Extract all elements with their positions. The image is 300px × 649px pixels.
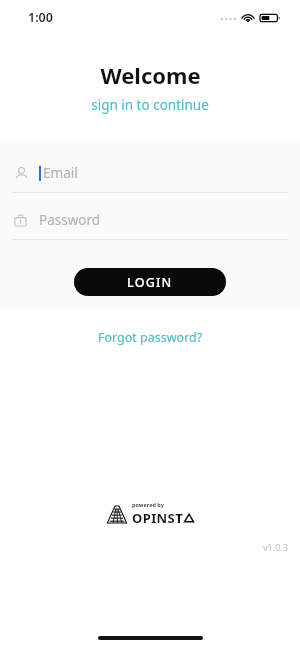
staticText: 1:00 — [28, 9, 53, 26]
button[interactable]: Password field — [0, 207, 300, 233]
other: Email field — [14, 166, 29, 181]
staticText: LOGIN — [127, 274, 173, 291]
button[interactable]: Forgot password? — [90, 325, 211, 350]
staticText: powered by — [132, 501, 164, 508]
staticText: Forgot password? — [98, 329, 203, 346]
staticText: v1.0.3 — [263, 541, 288, 553]
staticText: sign in to continue — [91, 96, 209, 114]
other: Opinsta logo — [107, 506, 127, 523]
staticText: Password — [39, 211, 101, 229]
button[interactable]: Email field — [0, 160, 300, 186]
staticText: Welcome — [100, 60, 201, 90]
staticText: OPINST — [132, 509, 184, 527]
other: Password field — [14, 214, 27, 227]
staticText: Email — [43, 164, 78, 182]
button[interactable]: LOGIN — [74, 268, 226, 296]
